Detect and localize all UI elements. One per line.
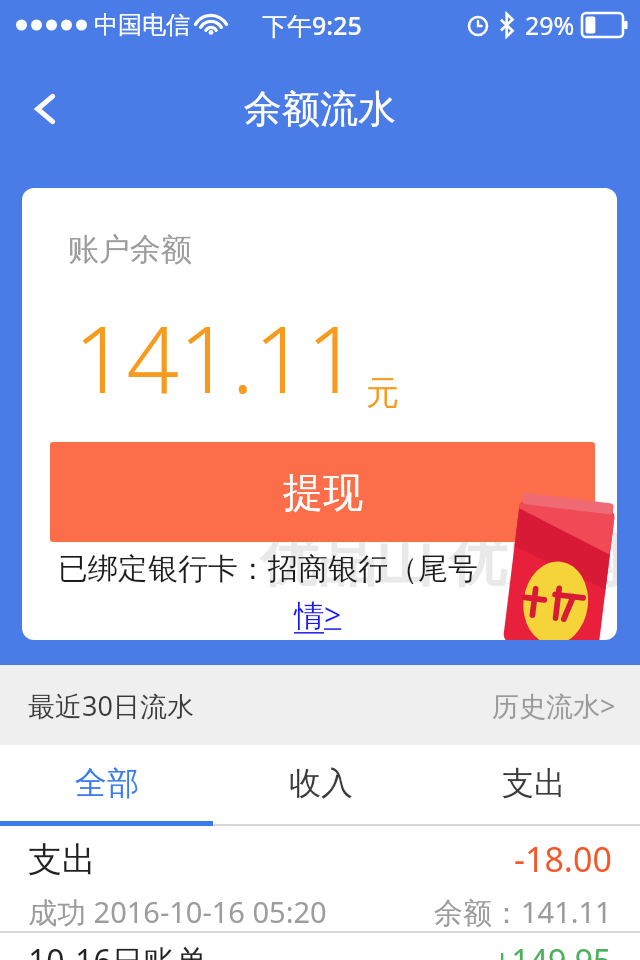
button[interactable]: 历史流水> (492, 687, 640, 724)
button[interactable]: Back (14, 77, 78, 141)
staticText: 情> (294, 594, 342, 635)
button[interactable]: 10-16日账单 (0, 933, 640, 960)
staticText: 全部 (75, 763, 139, 803)
staticText: 支出 (502, 763, 566, 803)
button[interactable]: 收入 (214, 745, 427, 821)
button[interactable]: 情> (22, 594, 617, 635)
staticText: 收入 (289, 763, 353, 803)
button[interactable]: 提现 (50, 442, 595, 542)
staticText: 最近30日流水 (28, 687, 194, 724)
button[interactable]: 支出 (427, 745, 640, 821)
button[interactable]: 全部 (0, 745, 214, 821)
staticText: 余额：141.11 (434, 892, 612, 931)
staticText: 余额流水 (244, 85, 396, 133)
staticText: 支出 (28, 838, 96, 881)
staticText: 账户余额 (68, 230, 192, 269)
staticText: 元 (366, 372, 399, 414)
button[interactable]: 支出 (0, 826, 640, 931)
staticText: 提现 (283, 467, 363, 517)
staticText: 10-16日账单 (28, 939, 208, 960)
staticText: 成功 2016-10-16 05:20 (28, 892, 327, 931)
staticText: +149.95 (493, 939, 612, 960)
staticText: 29% (525, 8, 575, 42)
staticText: -18.00 (514, 836, 612, 882)
staticText: 优品山 优购网 (260, 518, 617, 597)
staticText: 下午9:25 (262, 8, 362, 42)
staticText: 中国电信 (94, 10, 190, 40)
staticText: 已绑定银行卡：招商银行（尾号 (58, 550, 478, 588)
staticText: 141.11 (74, 295, 360, 420)
staticText: 历史流水> (492, 687, 616, 724)
